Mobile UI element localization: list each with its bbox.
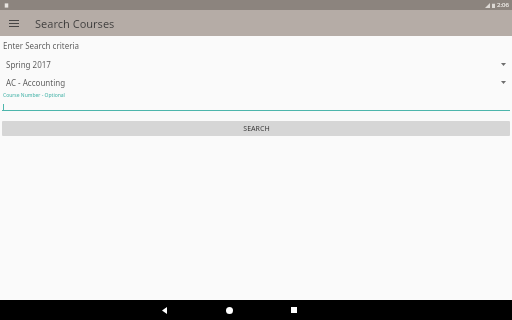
button[interactable]: Spring 2017 [0,58,512,71]
staticText: AC - Accounting [6,77,66,88]
button[interactable]: Home [219,300,239,320]
button[interactable]: Back [154,300,174,320]
button[interactable]: Course Number - Optional [0,92,512,111]
staticText: Search Courses [35,16,115,31]
staticText: Spring 2017 [6,59,51,70]
button[interactable]: Open navigation drawer [7,17,20,30]
staticText: 2:06 [497,1,509,9]
staticText: Course Number - Optional [3,92,65,99]
button[interactable]: Recent apps [284,300,304,320]
button[interactable]: SEARCH [2,121,510,136]
button[interactable]: AC - Accounting [0,76,512,89]
staticText: Enter Search criteria [3,40,80,51]
staticText: SEARCH [243,124,270,134]
